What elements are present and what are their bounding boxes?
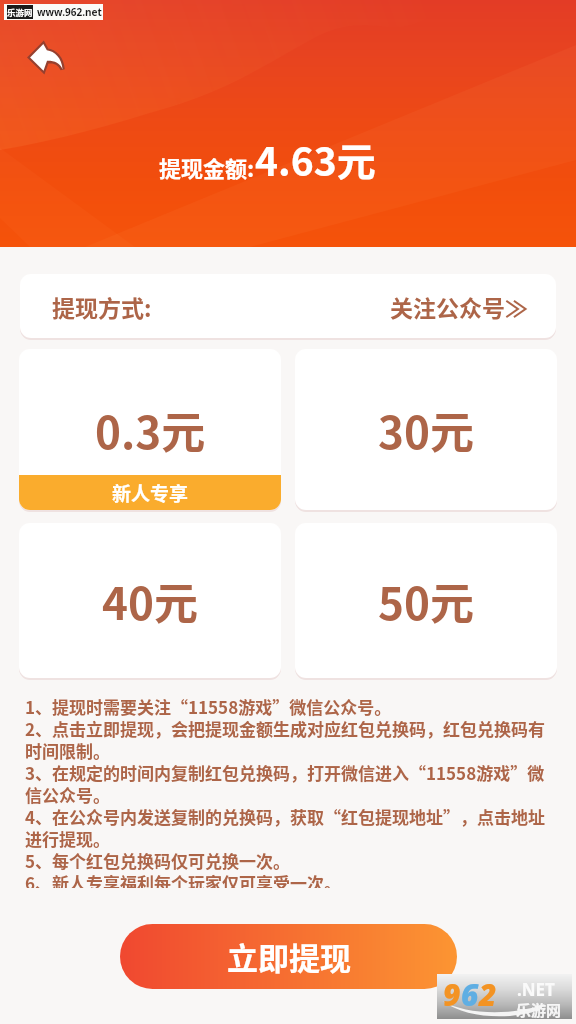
staticText: ≫ xyxy=(505,290,528,323)
staticText: www.962.net xyxy=(37,5,102,19)
button[interactable]: 0.3元 xyxy=(19,349,281,510)
staticText: 提现金额: xyxy=(159,151,255,183)
staticText: 4.63元 xyxy=(255,131,376,187)
button[interactable]: 40元 xyxy=(19,523,281,678)
button[interactable]: 30元 xyxy=(295,349,557,510)
staticText: 40元 xyxy=(102,569,198,633)
staticText: 30元 xyxy=(378,398,474,462)
staticText: 9 xyxy=(443,974,461,1015)
staticText: 2 xyxy=(479,974,497,1015)
staticText: 50元 xyxy=(378,569,474,633)
staticText: 立即提现 xyxy=(227,934,351,979)
staticText: 乐游网 xyxy=(7,6,33,18)
staticText: .NET xyxy=(517,978,555,1001)
staticText: 6 xyxy=(461,974,479,1015)
button[interactable]: 立即提现 xyxy=(120,924,457,989)
button[interactable]: 50元 xyxy=(295,523,557,678)
button[interactable]: Back xyxy=(25,41,64,74)
button[interactable]: 提现方式: xyxy=(20,274,556,338)
staticText: 0.3元 xyxy=(95,398,206,462)
staticText: 乐游网 xyxy=(516,999,562,1021)
staticText: 新人专享 xyxy=(112,479,189,507)
staticText: 关注公众号 xyxy=(390,290,505,323)
staticText: 提现方式: xyxy=(52,290,152,323)
staticText: 1、提现时需要关注“11558游戏”微信公众号。 2、点击立即提现，会把提现金额… xyxy=(25,694,557,888)
